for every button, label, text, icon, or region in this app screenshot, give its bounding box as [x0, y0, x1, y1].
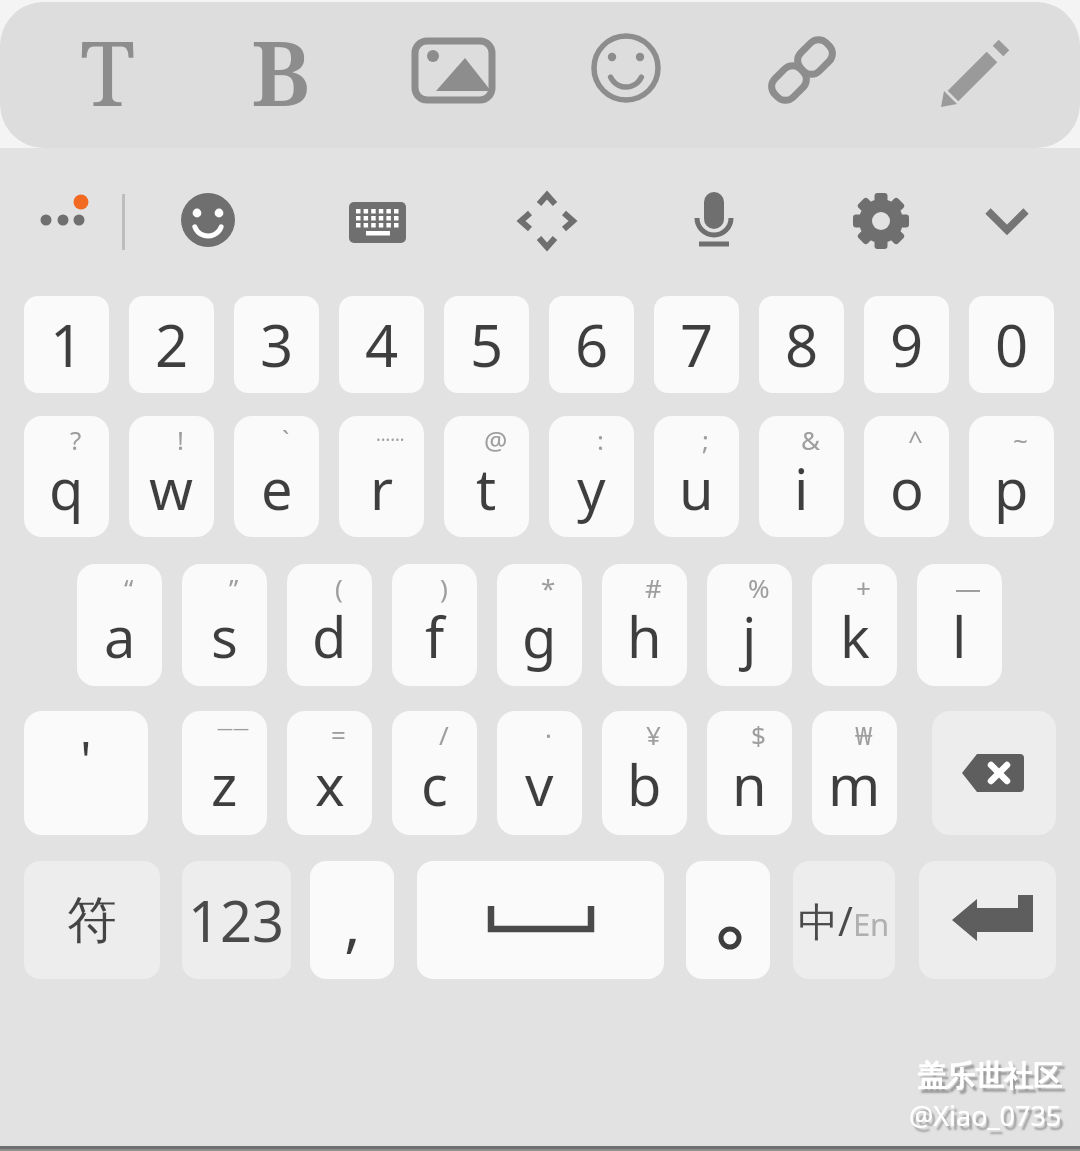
button[interactable]: [172, 184, 244, 256]
staticText: g: [522, 598, 557, 674]
button[interactable]: [29, 193, 95, 249]
button[interactable]: s: [182, 564, 267, 686]
button[interactable]: 9: [864, 296, 949, 393]
button[interactable]: i: [759, 416, 844, 537]
staticText: ·: [545, 717, 552, 752]
button[interactable]: o: [864, 416, 949, 537]
button[interactable]: 2: [129, 296, 214, 393]
button[interactable]: d: [287, 564, 372, 686]
button[interactable]: e: [234, 416, 319, 537]
staticText: u: [679, 450, 714, 526]
button[interactable]: [403, 28, 503, 112]
staticText: 5: [470, 305, 504, 384]
button[interactable]: [576, 18, 676, 118]
button[interactable]: 符: [24, 861, 160, 979]
button[interactable]: [686, 861, 770, 979]
staticText: %: [748, 570, 770, 605]
staticText: 符: [67, 889, 117, 952]
button[interactable]: l: [917, 564, 1002, 686]
staticText: ~: [1013, 422, 1028, 457]
button[interactable]: w: [129, 416, 214, 537]
button[interactable]: g: [497, 564, 582, 686]
staticText: ': [80, 724, 92, 795]
staticText: o: [890, 450, 924, 526]
button[interactable]: x: [287, 711, 372, 835]
staticText: n: [732, 746, 767, 822]
button[interactable]: p: [969, 416, 1054, 537]
button[interactable]: [919, 861, 1056, 979]
staticText: !: [177, 422, 184, 457]
button[interactable]: t: [444, 416, 529, 537]
button[interactable]: 123: [182, 861, 291, 979]
button[interactable]: z: [182, 711, 267, 835]
button[interactable]: h: [602, 564, 687, 686]
staticText: x: [315, 746, 345, 822]
button[interactable]: 6: [549, 296, 634, 393]
button[interactable]: [342, 186, 414, 258]
staticText: z: [211, 746, 238, 822]
staticText: T: [80, 10, 136, 130]
staticText: 盖乐世社区: [917, 1058, 1062, 1095]
button[interactable]: v: [497, 711, 582, 835]
staticText: @Xiao_0735: [909, 1097, 1062, 1134]
button[interactable]: B: [231, 10, 331, 130]
button[interactable]: [925, 20, 1025, 116]
button[interactable]: 0: [969, 296, 1054, 393]
staticText: 1: [50, 305, 84, 384]
staticText: l: [952, 598, 967, 674]
staticText: q: [49, 450, 84, 526]
button[interactable]: [932, 711, 1056, 835]
button[interactable]: b: [602, 711, 687, 835]
button[interactable]: 7: [654, 296, 739, 393]
button[interactable]: y: [549, 416, 634, 537]
button[interactable]: 3: [234, 296, 319, 393]
button[interactable]: [974, 190, 1040, 252]
staticText: m: [828, 746, 881, 822]
staticText: 123: [188, 882, 285, 958]
staticText: ……: [376, 422, 405, 447]
button[interactable]: 1: [24, 296, 109, 393]
button[interactable]: j: [707, 564, 792, 686]
staticText: “: [124, 570, 134, 605]
staticText: 8: [785, 305, 819, 384]
staticText: b: [627, 746, 662, 822]
staticText: a: [104, 598, 136, 674]
button[interactable]: [681, 182, 747, 262]
button[interactable]: q: [24, 416, 109, 537]
staticText: @: [484, 422, 508, 457]
staticText: —: [955, 570, 982, 605]
button[interactable]: T: [58, 10, 158, 130]
staticText: ¥: [646, 717, 661, 752]
button[interactable]: c: [392, 711, 477, 835]
button[interactable]: 中/En: [793, 861, 895, 979]
button[interactable]: [417, 861, 664, 979]
button[interactable]: [511, 185, 583, 257]
button[interactable]: [848, 184, 914, 258]
button[interactable]: 4: [339, 296, 424, 393]
button[interactable]: [752, 20, 852, 116]
button[interactable]: u: [654, 416, 739, 537]
staticText: r: [370, 450, 394, 526]
button[interactable]: f: [392, 564, 477, 686]
staticText: f: [425, 598, 445, 674]
staticText: 中/En: [798, 893, 890, 948]
button[interactable]: n: [707, 711, 792, 835]
staticText: d: [312, 598, 347, 674]
button[interactable]: m: [812, 711, 897, 835]
staticText: c: [421, 746, 448, 822]
staticText: h: [627, 598, 662, 674]
button[interactable]: r: [339, 416, 424, 537]
button[interactable]: 8: [759, 296, 844, 393]
button[interactable]: 5: [444, 296, 529, 393]
staticText: /: [439, 717, 449, 752]
button[interactable]: ': [24, 711, 148, 835]
button[interactable]: k: [812, 564, 897, 686]
staticText: ——: [217, 717, 250, 739]
button[interactable]: ,: [310, 861, 394, 979]
staticText: 7: [680, 305, 714, 384]
staticText: 0: [995, 305, 1029, 384]
staticText: 3: [260, 305, 294, 384]
button[interactable]: a: [77, 564, 162, 686]
staticText: i: [794, 450, 809, 526]
staticText: w: [149, 450, 194, 526]
